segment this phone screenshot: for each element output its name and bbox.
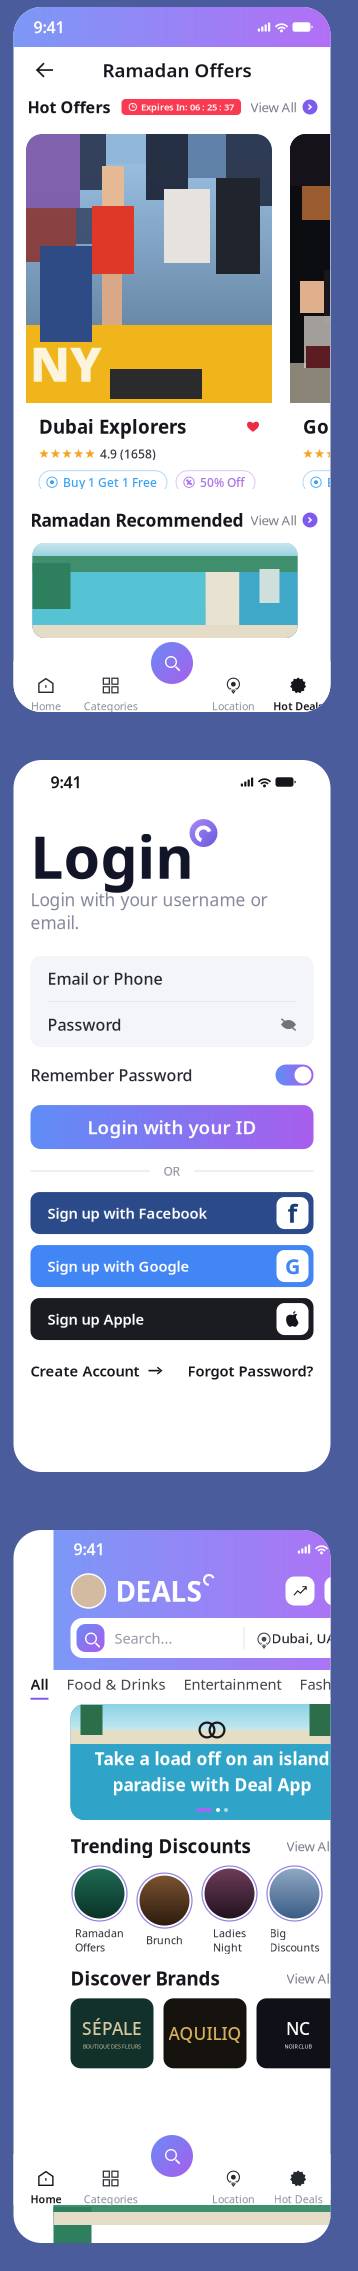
staticText: NOIR CLUB [284,2043,311,2050]
staticText: Expires In: 06 : 25 : 37 [141,101,234,113]
staticText: Ladies Night [213,1926,246,1954]
staticText: Sign up with Google [47,1256,189,1276]
staticText: DEALS [115,1572,201,1610]
staticText: SÉPALE [82,2017,142,2040]
button[interactable]: Search [147,2131,197,2181]
button[interactable]: View All [286,1833,353,1859]
button[interactable]: Gourmet [290,134,358,489]
staticText: View All [286,1837,332,1855]
staticText: BOUTIQUE DES FLEURS [83,2043,141,2050]
staticText: Home [31,699,61,713]
button[interactable]: Home [13,661,78,712]
staticText: Hot Offers [27,96,110,118]
staticText: Sign up with Facebook [47,1203,207,1223]
staticText: Discover Brands [70,1966,219,1991]
staticText: Categories [84,699,138,713]
button[interactable]: Categories [78,661,143,712]
button[interactable]: Brunch [135,1873,193,1947]
staticText: 9:41 [50,771,81,793]
staticText: Buy 1 Get 1 Free [327,474,358,490]
button[interactable]: AQUILIQ [163,1998,246,2068]
staticText: Location [212,699,255,713]
staticText: Big Discounts [269,1926,319,1954]
button[interactable]: Location [201,661,266,712]
staticText: Take a load off on an island [94,1747,329,1770]
staticText: View All [250,511,296,529]
button[interactable]: More [330,1873,358,1947]
staticText: 9:41 [73,1538,104,1560]
button[interactable]: NY [26,134,272,489]
button[interactable]: View All [250,507,317,533]
staticText: Ramadan Offers [75,1926,124,1954]
button[interactable]: Ladies Night [200,1866,258,1954]
staticText: View All [286,1969,332,1987]
button[interactable]: Show password [280,1018,296,1031]
staticText: Ramadan Recommended [30,508,243,531]
button[interactable]: Login with your ID [30,1105,313,1149]
staticText: View All [250,98,296,116]
staticText: Password [47,1014,121,1035]
button[interactable]: SÉPALE [70,1998,153,2068]
staticText: Food & Drinks [66,1674,165,1694]
button[interactable]: View All [250,94,317,120]
button[interactable]: Sign up Apple [30,1298,313,1340]
staticText: Remember Password [30,1064,192,1086]
button[interactable]: Forgot Password? [187,1358,313,1383]
staticText: Entertainment [183,1674,281,1694]
button[interactable]: Notifications [324,1576,353,1605]
staticText: Location [212,2192,255,2206]
staticText: AQUILIQ [168,2022,241,2045]
staticText: Forgot Password? [187,1361,313,1380]
staticText: All [30,1674,48,1694]
staticText: Hot Deals [273,699,323,713]
button[interactable]: Sign up with Facebook [30,1192,313,1234]
button[interactable]: Create Account [30,1358,162,1383]
button[interactable]: Ramadan Offers [70,1866,128,1954]
staticText: NC [286,2017,310,2040]
staticText: 50% Off [200,474,245,490]
staticText: Dubai, UAE [271,1629,342,1647]
staticText: Fashion & Retail [299,1674,358,1694]
button[interactable]: Back [23,53,65,87]
staticText: Home [30,2192,61,2206]
staticText: OR [163,1163,180,1179]
button[interactable]: Location [201,2154,266,2205]
staticText: Buy 1 Get 1 Free [63,474,157,490]
button[interactable]: Search [147,638,197,688]
button[interactable]: Hot Deals [266,2154,331,2205]
button[interactable]: Big Discounts [265,1866,323,1954]
staticText: G [285,1252,300,1280]
staticText: NY [30,331,102,395]
staticText: Create Account [30,1361,139,1380]
button[interactable]: Entertainment [183,1674,281,1700]
staticText: Gourmet [303,414,358,439]
staticText: 9:41 [33,16,64,38]
staticText: Trending Discounts [70,1834,250,1858]
staticText: Email or Phone [47,968,162,989]
staticText: Login [30,817,193,895]
button[interactable]: Sign up with Google [30,1245,313,1287]
button[interactable]: Remember password [275,1064,313,1085]
button[interactable]: Fashion & Retail [299,1674,358,1700]
button[interactable]: Activity [285,1576,314,1605]
button[interactable]: View All [286,1965,353,1991]
button[interactable]: Categories [78,2154,143,2205]
staticText: Categories [84,2192,138,2206]
staticText: Search... [114,1628,172,1648]
staticText: Dubai Explorers [39,414,186,439]
staticText: Login with your username or email. [30,888,267,934]
button[interactable]: Home [13,2154,78,2205]
staticText: 4.9 (1658) [100,446,156,462]
staticText: Login with your ID [87,1115,256,1139]
button[interactable]: All [30,1674,48,1700]
staticText: Hot Deals [274,2192,323,2206]
staticText: Sign up Apple [47,1309,144,1329]
staticText: f [287,1196,297,1230]
button[interactable]: Food & Drinks [66,1674,165,1700]
staticText: Brunch [146,1933,183,1947]
button[interactable]: NC [256,1998,339,2068]
button[interactable]: Hot Deals [266,661,331,712]
staticText: paradise with Deal App [112,1773,311,1796]
